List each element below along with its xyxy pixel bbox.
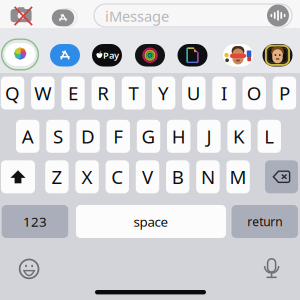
button[interactable]: S — [46, 120, 70, 153]
staticText: T — [128, 81, 138, 105]
button[interactable]: Z — [45, 160, 69, 193]
button[interactable]: W — [31, 76, 54, 109]
button[interactable]: U — [182, 76, 205, 109]
staticText: 123 — [23, 213, 47, 230]
staticText: Pay — [103, 49, 119, 61]
button[interactable]: Photos — [1, 38, 39, 70]
button[interactable]: Apps — [52, 9, 74, 26]
staticText: N — [201, 164, 215, 189]
staticText: P — [279, 81, 290, 105]
button[interactable]: return — [231, 205, 298, 238]
button[interactable]: H — [167, 120, 190, 153]
button[interactable]: D — [76, 120, 100, 153]
staticText: Y — [158, 81, 169, 105]
staticText: L — [264, 124, 274, 149]
button[interactable]: Record audio — [267, 4, 289, 26]
staticText: U — [187, 81, 201, 105]
staticText: R — [97, 81, 109, 105]
staticText: C — [111, 164, 123, 189]
staticText: M — [230, 164, 247, 189]
button[interactable]: Memoji — [262, 44, 292, 66]
button[interactable]: V — [136, 160, 159, 193]
button[interactable]: Memoji sticker — [223, 44, 253, 66]
button[interactable]: P — [273, 76, 296, 109]
button[interactable]: K — [227, 120, 251, 153]
button[interactable]: Q — [1, 76, 24, 109]
button[interactable]: Y — [152, 76, 175, 109]
button[interactable]: Pages — [177, 44, 207, 66]
staticText: D — [81, 124, 95, 149]
button[interactable]: Activity — [135, 44, 165, 66]
staticText: E — [68, 81, 78, 105]
staticText: F — [113, 124, 123, 149]
button[interactable]: E — [61, 76, 85, 109]
button[interactable]: App Store — [50, 44, 80, 66]
staticText: V — [142, 164, 153, 189]
staticText: Z — [51, 164, 62, 189]
staticText: I — [221, 81, 227, 105]
button[interactable]: X — [75, 160, 99, 193]
staticText: K — [233, 124, 245, 149]
button[interactable]: Shift — [1, 160, 35, 193]
staticText: W — [34, 81, 51, 105]
staticText: iMessage — [105, 6, 169, 26]
button[interactable]: 123 — [2, 205, 68, 238]
button[interactable]: A — [16, 120, 39, 153]
button[interactable]: N — [196, 160, 220, 193]
button[interactable]: Dictation — [262, 258, 281, 279]
staticText: A — [22, 124, 34, 149]
button[interactable]: L — [258, 120, 281, 153]
button[interactable]: I — [212, 76, 236, 109]
staticText: J — [206, 124, 211, 149]
staticText: Q — [5, 81, 20, 105]
button[interactable]: T — [122, 76, 145, 109]
staticText: G — [141, 124, 155, 149]
button[interactable]: C — [106, 160, 129, 193]
staticText: X — [82, 164, 93, 189]
button[interactable]: space — [76, 205, 226, 238]
button[interactable]: O — [242, 76, 266, 109]
button[interactable]: Emoji — [19, 259, 39, 279]
button[interactable]: G — [137, 120, 160, 153]
staticText: B — [172, 164, 184, 189]
staticText: return — [247, 213, 282, 229]
button[interactable]: B — [166, 160, 189, 193]
button[interactable]: F — [107, 120, 130, 153]
staticText: space — [133, 213, 168, 230]
button[interactable]: M — [226, 160, 250, 193]
button[interactable]: J — [197, 120, 221, 153]
button[interactable]: Apple Pay — [92, 44, 122, 66]
staticText: S — [53, 124, 63, 149]
button[interactable]: Delete — [265, 160, 298, 193]
staticText: H — [172, 124, 186, 149]
button[interactable]: Camera — [11, 6, 34, 26]
button[interactable]: R — [91, 76, 115, 109]
staticText: O — [247, 81, 262, 105]
